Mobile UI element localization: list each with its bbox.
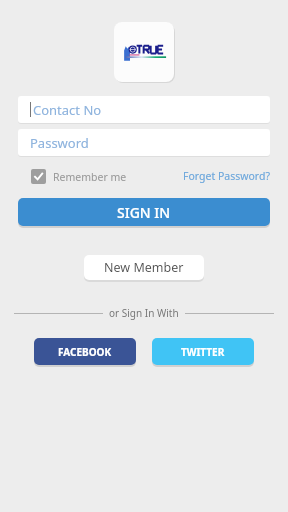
staticText: TWITTER [181, 345, 225, 359]
button[interactable]: FACEBOOK [34, 338, 136, 365]
staticText: SIGN IN [117, 203, 171, 222]
button[interactable]: Remember me [31, 169, 127, 184]
button[interactable]: Password [18, 129, 270, 156]
staticText: Password [30, 134, 89, 152]
button[interactable]: New Member [84, 255, 204, 280]
staticText: Contact No [33, 101, 102, 119]
button[interactable]: TWITTER [152, 338, 254, 365]
staticText: Remember me [53, 170, 127, 184]
staticText: FACEBOOK [58, 345, 112, 359]
staticText: or Sign In With [109, 306, 179, 320]
staticText: New Member [104, 259, 184, 276]
button[interactable]: Contact No [18, 96, 270, 123]
button[interactable]: Forget Password? [183, 169, 270, 183]
staticText: Forget Password? [183, 169, 270, 183]
button[interactable]: SIGN IN [18, 198, 270, 226]
